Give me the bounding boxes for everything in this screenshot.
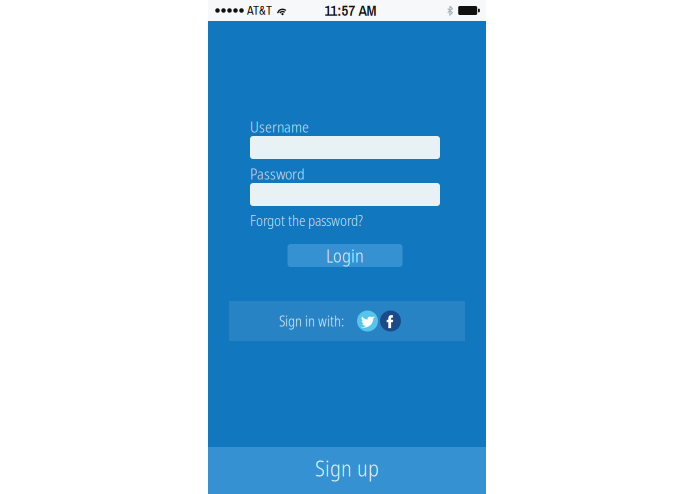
button[interactable]: Forgot the password? <box>250 215 440 226</box>
staticText: Login <box>326 243 364 268</box>
button[interactable]: Password field <box>250 183 440 206</box>
staticText: Username <box>250 116 309 137</box>
staticText: Forgot the password? <box>250 211 363 230</box>
staticText: 11:57 AM <box>324 1 376 20</box>
button[interactable]: Sign in with Facebook <box>380 310 401 331</box>
staticText: Sign up <box>315 453 379 483</box>
button[interactable]: Sign up <box>208 447 486 494</box>
staticText: AT&T <box>247 2 272 19</box>
button[interactable]: Username field <box>250 136 440 159</box>
staticText: Password <box>250 163 305 184</box>
staticText: Sign in with: <box>279 311 344 331</box>
button[interactable]: Login <box>287 244 402 267</box>
button[interactable]: Sign in with Twitter <box>357 310 378 331</box>
